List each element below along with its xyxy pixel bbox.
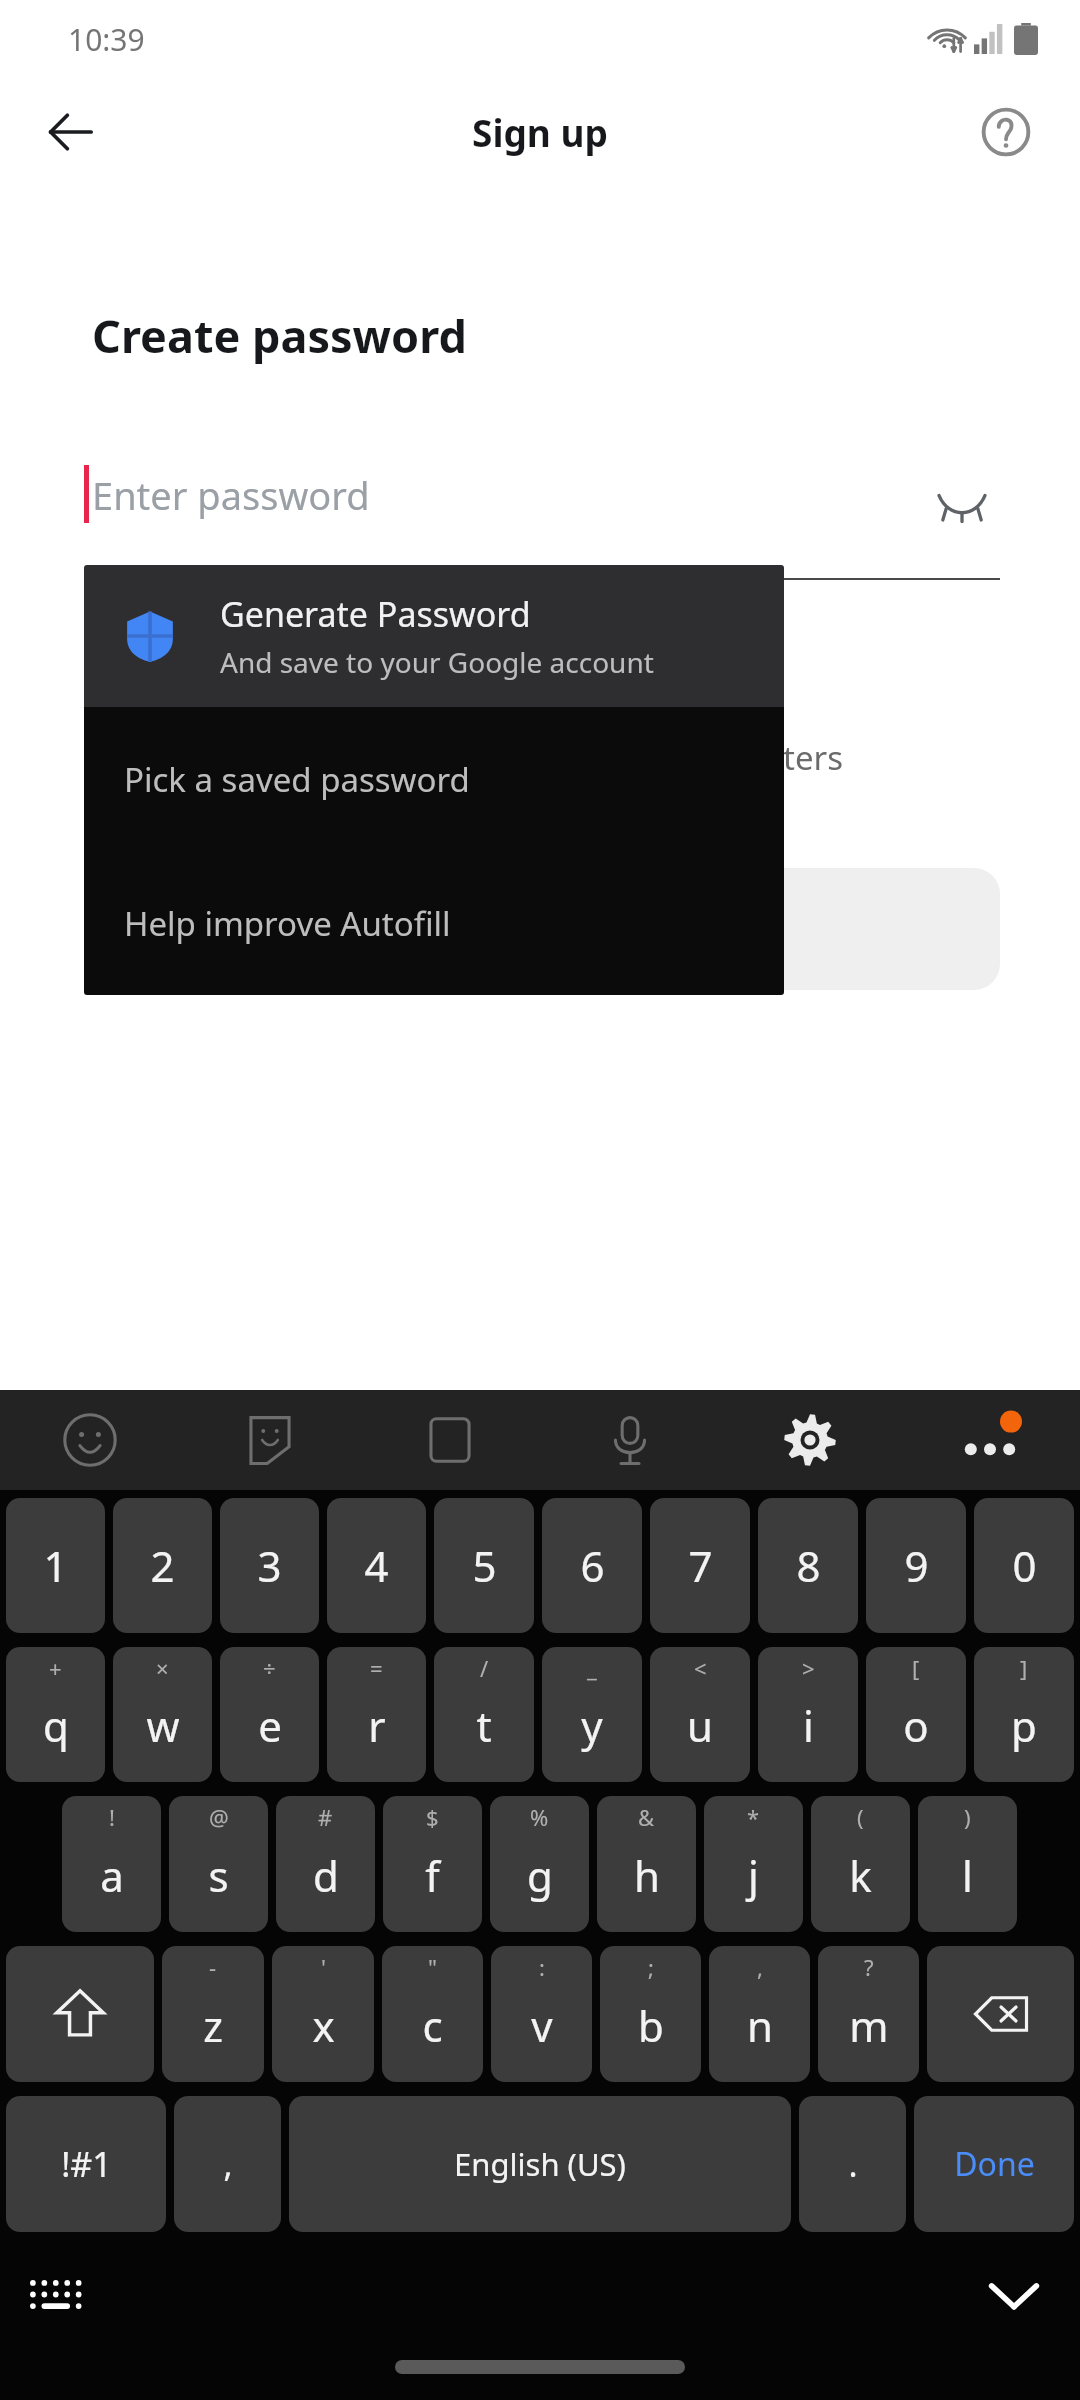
staticText: z bbox=[203, 1997, 223, 2054]
button[interactable]: GIF bbox=[406, 1396, 494, 1484]
button[interactable]: Generate Password bbox=[84, 565, 784, 707]
button[interactable]: = bbox=[327, 1647, 426, 1782]
staticText: English (US) bbox=[454, 2143, 626, 2185]
button[interactable]: Stickers bbox=[226, 1396, 314, 1484]
staticText: ( bbox=[857, 1802, 864, 1832]
staticText: # bbox=[318, 1802, 333, 1832]
button[interactable]: * bbox=[704, 1796, 803, 1932]
staticText: x bbox=[312, 1997, 335, 2054]
button[interactable]: Done bbox=[914, 2096, 1074, 2232]
button[interactable]: _ bbox=[542, 1647, 642, 1782]
button[interactable]: ( bbox=[811, 1796, 910, 1932]
button[interactable]: Change keyboard bbox=[10, 2250, 100, 2340]
button[interactable]: Enter password bbox=[84, 455, 1000, 555]
button[interactable]: 8 bbox=[758, 1498, 858, 1633]
button[interactable]: Show password bbox=[924, 467, 1000, 543]
staticText: 4 bbox=[364, 1537, 389, 1594]
button[interactable]: " bbox=[382, 1946, 483, 2082]
button[interactable]: × bbox=[113, 1647, 212, 1782]
button[interactable]: Back bbox=[32, 94, 108, 170]
button[interactable]: 1 bbox=[6, 1498, 105, 1633]
staticText: > bbox=[802, 1653, 815, 1683]
staticText: k bbox=[849, 1847, 872, 1904]
staticText: ) bbox=[964, 1802, 971, 1832]
staticText: Done bbox=[954, 2142, 1035, 2186]
button[interactable]: Backspace bbox=[927, 1946, 1074, 2082]
staticText: Pick a saved password bbox=[124, 757, 470, 802]
staticText: 0 bbox=[1012, 1537, 1037, 1594]
button[interactable] bbox=[600, 868, 1000, 990]
button[interactable]: 9 bbox=[866, 1498, 966, 1633]
button[interactable]: / bbox=[434, 1647, 534, 1782]
staticText: r bbox=[368, 1697, 386, 1754]
staticText: p bbox=[1011, 1697, 1037, 1754]
button[interactable]: Voice input bbox=[586, 1396, 674, 1484]
staticText: f bbox=[425, 1847, 440, 1904]
staticText: n bbox=[747, 1997, 773, 2054]
button[interactable]: 7 bbox=[650, 1498, 750, 1633]
staticText: !#1 bbox=[61, 2141, 112, 2187]
button[interactable]: ; bbox=[600, 1946, 701, 2082]
button[interactable]: Settings bbox=[766, 1396, 854, 1484]
staticText: ] bbox=[1020, 1653, 1028, 1683]
staticText: l bbox=[962, 1847, 973, 1904]
button[interactable]: ' bbox=[272, 1946, 374, 2082]
staticText: w bbox=[146, 1697, 180, 1754]
staticText: / bbox=[480, 1653, 489, 1683]
button[interactable]: # bbox=[276, 1796, 375, 1932]
button[interactable]: & bbox=[597, 1796, 696, 1932]
staticText: i bbox=[803, 1697, 814, 1754]
button[interactable]: Emoji bbox=[46, 1396, 134, 1484]
button[interactable]: + bbox=[6, 1647, 105, 1782]
button[interactable]: % bbox=[490, 1796, 589, 1932]
staticText: 8 bbox=[796, 1537, 821, 1594]
staticText: % bbox=[530, 1802, 549, 1832]
staticText: h bbox=[634, 1847, 660, 1904]
staticText: - bbox=[209, 1952, 217, 1982]
staticText: @ bbox=[209, 1802, 229, 1832]
button[interactable]: , bbox=[174, 2096, 281, 2232]
button[interactable]: ÷ bbox=[220, 1647, 319, 1782]
button[interactable]: 2 bbox=[113, 1498, 212, 1633]
button[interactable]: ? bbox=[818, 1946, 919, 2082]
button[interactable]: Pick a saved password bbox=[84, 707, 784, 851]
staticText: 5 bbox=[472, 1537, 497, 1594]
button[interactable]: @ bbox=[169, 1796, 268, 1932]
button[interactable]: Hide keyboard bbox=[966, 2248, 1062, 2344]
staticText: At least 8 characters bbox=[530, 735, 844, 780]
button[interactable]: 3 bbox=[220, 1498, 319, 1633]
staticText: 10:39 bbox=[68, 19, 145, 60]
button[interactable]: , bbox=[709, 1946, 810, 2082]
button[interactable]: - bbox=[162, 1946, 264, 2082]
staticText: 6 bbox=[580, 1537, 605, 1594]
staticText: g bbox=[527, 1847, 553, 1904]
staticText: u bbox=[687, 1697, 713, 1754]
button[interactable]: [ bbox=[866, 1647, 966, 1782]
button[interactable]: ] bbox=[974, 1647, 1074, 1782]
button[interactable]: 0 bbox=[974, 1498, 1074, 1633]
button[interactable]: > bbox=[758, 1647, 858, 1782]
button[interactable]: : bbox=[491, 1946, 592, 2082]
button[interactable]: $ bbox=[383, 1796, 482, 1932]
staticText: o bbox=[903, 1697, 929, 1754]
staticText: _ bbox=[587, 1653, 597, 1683]
staticText: < bbox=[694, 1653, 707, 1683]
button[interactable]: 5 bbox=[434, 1498, 534, 1633]
button[interactable]: Shift bbox=[6, 1946, 154, 2082]
staticText: b bbox=[638, 1997, 664, 2054]
button[interactable]: Help bbox=[968, 94, 1044, 170]
button[interactable]: . bbox=[799, 2096, 906, 2232]
staticText: = bbox=[370, 1653, 383, 1683]
staticText: Sign up bbox=[472, 107, 608, 157]
button[interactable]: Help improve Autofill bbox=[84, 851, 784, 995]
staticText: m bbox=[849, 1997, 889, 2054]
button[interactable]: More bbox=[946, 1396, 1034, 1484]
button[interactable]: ! bbox=[62, 1796, 161, 1932]
button[interactable]: ) bbox=[918, 1796, 1017, 1932]
button[interactable]: < bbox=[650, 1647, 750, 1782]
button[interactable]: 4 bbox=[327, 1498, 426, 1633]
staticText: 7 bbox=[688, 1537, 713, 1594]
button[interactable]: 6 bbox=[542, 1498, 642, 1633]
button[interactable]: English (US) bbox=[289, 2096, 791, 2232]
button[interactable]: !#1 bbox=[6, 2096, 166, 2232]
